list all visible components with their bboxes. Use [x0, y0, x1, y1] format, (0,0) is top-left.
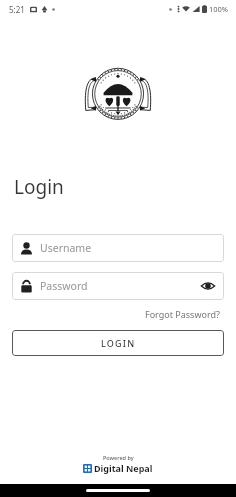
staticText: 5:21: [9, 4, 25, 15]
staticText: 100%: [209, 4, 229, 14]
other: Password: [20, 280, 33, 293]
staticText: LOGIN: [101, 337, 136, 349]
button[interactable]: Show password: [196, 274, 220, 298]
staticText: Powered by: [103, 454, 134, 461]
button[interactable]: Password: [12, 272, 224, 300]
staticText: Username: [40, 241, 220, 255]
staticText: Digital Nepal: [94, 462, 153, 474]
button[interactable]: LOGIN: [12, 330, 224, 356]
button[interactable]: Username: [12, 234, 224, 262]
staticText: Password: [40, 279, 196, 293]
other: Username: [20, 242, 33, 255]
button[interactable]: Forgot Password?: [143, 306, 222, 322]
staticText: Login: [14, 174, 64, 200]
staticText: Forgot Password?: [145, 308, 220, 320]
